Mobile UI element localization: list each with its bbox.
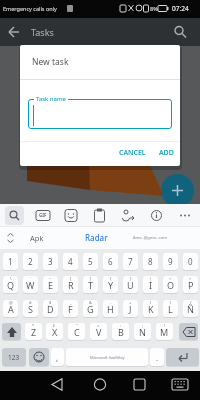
staticText: £ <box>53 323 56 328</box>
staticText: " <box>76 323 78 328</box>
staticText: K <box>148 303 154 315</box>
staticText: Z <box>31 326 37 338</box>
staticText: E <box>48 279 54 291</box>
staticText: Apk <box>30 233 44 243</box>
staticText: U <box>127 279 134 291</box>
staticText: T <box>88 279 94 291</box>
staticText: H <box>107 303 114 315</box>
staticText: G <box>87 303 94 315</box>
staticText: L <box>168 303 173 315</box>
staticText: 3 <box>48 256 53 267</box>
staticText: Radar <box>85 232 108 243</box>
staticText: S <box>28 303 33 315</box>
staticText: | <box>149 276 152 281</box>
staticText: 0 <box>188 256 193 267</box>
staticText: V <box>96 326 102 338</box>
staticText: B <box>118 326 124 338</box>
staticText: J <box>129 303 132 315</box>
staticText: # <box>29 300 32 305</box>
staticText: F <box>68 303 73 315</box>
staticText: Emergency calls only <box>3 5 57 12</box>
staticText: 123 <box>8 353 20 362</box>
staticText: 5 <box>88 256 93 267</box>
staticText: Tasks <box>31 26 54 38</box>
staticText: $ <box>49 300 52 305</box>
staticText: > <box>189 276 192 281</box>
staticText: 6 <box>108 256 113 267</box>
staticText: = <box>97 323 100 328</box>
staticText: M <box>160 326 169 338</box>
staticText: ! <box>164 323 166 328</box>
staticText: 8 <box>148 256 153 267</box>
staticText: 07:24 <box>172 4 189 13</box>
staticText: 8% <box>150 5 158 12</box>
staticText: 1 <box>8 256 13 267</box>
staticText: 7 <box>128 256 133 267</box>
staticText: P <box>188 279 194 291</box>
staticText: _ <box>70 300 72 305</box>
staticText: ' <box>30 276 31 281</box>
staticText: * <box>32 323 35 328</box>
staticText: ) <box>170 300 172 305</box>
staticText: & <box>89 300 92 305</box>
staticText: { <box>110 276 112 281</box>
staticText: O <box>167 279 175 291</box>
staticText: Task name <box>36 95 66 103</box>
staticText: A <box>8 303 14 315</box>
staticText: Y <box>108 279 114 291</box>
staticText: ; <box>142 323 144 328</box>
staticText: : <box>120 323 122 328</box>
staticText: ( <box>150 300 152 305</box>
staticText: R <box>68 279 74 291</box>
staticText: CANCEL <box>119 148 146 158</box>
staticText: C <box>74 326 80 338</box>
staticText: + <box>129 300 132 305</box>
staticText: I <box>149 279 153 291</box>
staticText: X <box>52 326 58 338</box>
staticText: W <box>26 279 35 291</box>
staticText: 9 <box>168 256 173 267</box>
staticText: ADD <box>159 148 174 158</box>
staticText: , <box>56 352 59 363</box>
staticText: Q <box>7 279 15 291</box>
staticText: [ <box>70 276 72 281</box>
staticText: / <box>190 300 192 305</box>
staticText: } <box>130 276 132 281</box>
staticText: Microsoft SwiftKey <box>90 355 125 360</box>
staticText: \ <box>10 276 12 281</box>
staticText: < <box>169 276 172 281</box>
staticText: Ame..@gma...com <box>133 235 168 240</box>
staticText: N <box>139 326 146 338</box>
staticText: GIF <box>39 212 47 218</box>
staticText: . <box>156 352 159 363</box>
staticText: ~ <box>49 276 52 281</box>
staticText: D <box>47 303 54 315</box>
staticText: Ñ <box>187 303 194 315</box>
staticText: 4 <box>68 256 73 267</box>
staticText: ] <box>90 276 92 281</box>
staticText: - <box>110 300 112 305</box>
staticText: New task <box>32 56 69 68</box>
staticText: 2 <box>28 256 33 267</box>
staticText: @ <box>9 300 13 305</box>
